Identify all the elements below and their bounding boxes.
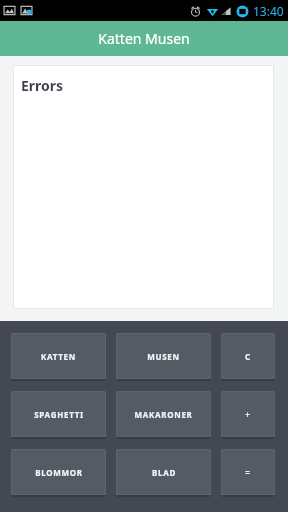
staticText: MAKARONER bbox=[134, 409, 193, 420]
button[interactable]: KATTEN bbox=[11, 333, 106, 379]
button[interactable]: MAKARONER bbox=[116, 391, 211, 437]
staticText: 13:40 bbox=[253, 3, 284, 19]
button[interactable]: = bbox=[221, 449, 275, 495]
staticText: MUSEN bbox=[147, 351, 180, 362]
staticText: + bbox=[245, 409, 251, 420]
button[interactable]: + bbox=[221, 391, 275, 437]
button[interactable]: MUSEN bbox=[116, 333, 211, 379]
staticText: Katten Musen bbox=[98, 29, 190, 48]
button[interactable]: C bbox=[221, 333, 275, 379]
staticText: BLOMMOR bbox=[35, 467, 83, 478]
button[interactable]: BLAD bbox=[116, 449, 211, 495]
button[interactable]: BLOMMOR bbox=[11, 449, 106, 495]
staticText: BLAD bbox=[152, 467, 176, 478]
staticText: KATTEN bbox=[41, 351, 76, 362]
button[interactable]: SPAGHETTI bbox=[11, 391, 106, 437]
staticText: SPAGHETTI bbox=[34, 409, 84, 420]
staticText: C bbox=[245, 351, 251, 362]
staticText: Errors bbox=[21, 76, 64, 95]
staticText: = bbox=[245, 467, 251, 478]
